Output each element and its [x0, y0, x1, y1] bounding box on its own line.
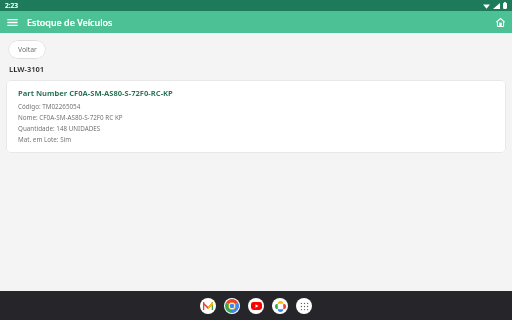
staticText: Mat. em Lote: Sim [18, 135, 72, 144]
staticText: Código: TM02265054 [18, 102, 81, 111]
staticText: Part Number CF0A-SM-AS80-S-72F0-RC-KP [18, 88, 173, 98]
button[interactable]: Home [491, 13, 509, 31]
button[interactable]: All apps [296, 298, 312, 314]
staticText: Nome: CF0A-SM-AS80-S-72F0 RC KP [18, 113, 123, 122]
staticText: Estoque de Veículos [27, 16, 113, 28]
button[interactable]: YouTube [248, 298, 264, 314]
staticText: LLW-3101 [9, 64, 45, 74]
button[interactable]: Voltar [8, 40, 46, 59]
staticText: Quantidade: 148 UNIDADES [18, 124, 101, 133]
button[interactable]: Part Number CF0A-SM-AS80-S-72F0-RC-KP [6, 80, 506, 153]
button[interactable]: Open navigation menu [3, 13, 21, 31]
staticText: Voltar [18, 45, 37, 54]
button[interactable]: Gmail [200, 298, 216, 314]
button[interactable]: Photos [272, 298, 288, 314]
staticText: 2:23 [5, 1, 18, 10]
button[interactable]: Chrome [224, 298, 240, 314]
